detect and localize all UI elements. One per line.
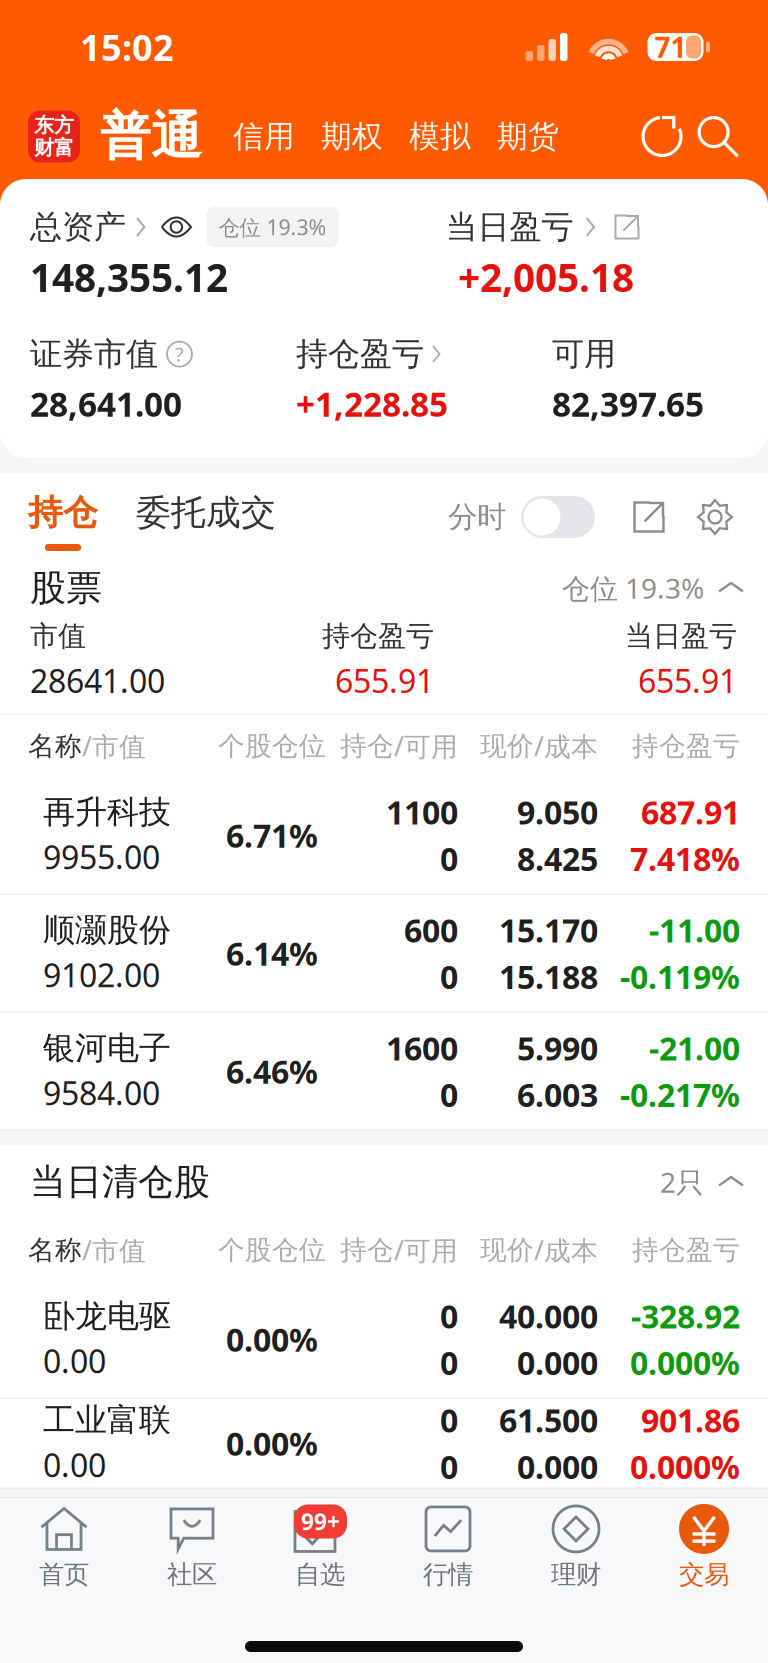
staticText: -328.92 [631,1295,740,1337]
staticText: 9955.00 [43,836,160,878]
staticText: 交易 [679,1559,729,1590]
staticText: 0 [440,837,458,880]
staticText: +2,005.18 [458,251,634,303]
staticText: 5.990 [517,1027,598,1069]
staticText: 普通 [100,105,202,168]
button[interactable]: 期权 [308,105,396,167]
staticText: 9584.00 [43,1072,160,1114]
staticText: 证券市值 [30,334,158,374]
staticText: 655.91 [335,659,434,702]
button[interactable]: 期货 [484,105,572,167]
staticText: 6.14% [226,932,318,974]
staticText: 0.00 [43,1340,106,1382]
button[interactable]: 总资产 [30,207,192,247]
staticText: 0.000 [517,1445,598,1488]
staticText: 1600 [386,1027,458,1069]
button[interactable]: 模拟 [396,105,484,167]
button[interactable]: 股票 [0,557,768,619]
staticText: 0.000% [630,1341,740,1384]
staticText: 82,397.65 [552,382,704,426]
staticText: 15.188 [499,955,598,998]
staticText: 持仓 [340,1234,394,1266]
staticText: 0 [440,1295,458,1337]
staticText: 99+ [301,1506,340,1536]
staticText: 分时 [448,499,506,535]
staticText: -0.217% [620,1073,740,1116]
button[interactable]: 当日清仓股 [0,1145,768,1219]
staticText: 15.170 [499,909,598,951]
staticText: 1100 [386,791,458,833]
button[interactable]: Search [690,108,746,164]
button[interactable]: Intraday chart toggle [521,496,595,538]
staticText: 持仓 [28,491,98,534]
button[interactable]: 当日盈亏 [446,207,640,247]
staticText: 9102.00 [43,954,160,996]
staticText: 6.46% [226,1050,318,1092]
button[interactable]: Refresh [634,108,690,164]
button[interactable]: 顺灏股份 [0,895,768,1013]
button[interactable]: 持仓 [28,473,98,557]
staticText: /成本 [534,728,598,764]
button[interactable]: Expand [627,495,671,539]
staticText: 自选 [295,1559,345,1590]
staticText: 卧龙电驱 [43,1296,171,1336]
staticText: 0 [440,955,458,998]
staticText: 名称 [28,730,82,762]
staticText: 0.00% [226,1318,318,1360]
staticText: /市值 [82,1232,146,1268]
staticText: 个股仓位 [218,730,326,762]
staticText: 655.91 [638,659,737,702]
staticText: 市值 [30,619,86,653]
button[interactable]: 工业富联 [0,1399,768,1489]
button[interactable]: 银河电子 [0,1013,768,1131]
staticText: ? [175,341,184,367]
staticText: 信用 [233,118,295,155]
staticText: 顺灏股份 [43,910,171,950]
button[interactable]: 信用 [220,105,308,167]
staticText: 9.050 [517,791,598,833]
staticText: 40.000 [499,1295,598,1337]
staticText: 当日盈亏 [625,619,737,653]
staticText: 社区 [167,1559,217,1590]
button[interactable]: 首页 [0,1501,128,1593]
staticText: 持仓盈亏 [632,730,740,762]
button[interactable]: 行情 [384,1501,512,1593]
button[interactable]: 卧龙电驱 [0,1281,768,1399]
staticText: 687.91 [641,791,740,833]
button[interactable]: 东方 [28,110,80,162]
staticText: 持仓盈亏 [322,619,434,653]
staticText: 0 [440,1445,458,1488]
button[interactable]: 社区 [128,1501,256,1593]
staticText: 0.000% [630,1445,740,1488]
staticText: 0 [440,1399,458,1441]
staticText: 行情 [423,1559,473,1590]
staticText: 工业富联 [43,1400,171,1440]
button[interactable]: 交易 [640,1501,768,1593]
staticText: 61.500 [499,1399,598,1441]
staticText: 持仓盈亏 [632,1234,740,1266]
staticText: 委托成交 [136,491,276,534]
staticText: 期货 [497,118,559,155]
staticText: 现价 [480,1234,534,1266]
staticText: 模拟 [409,118,471,155]
staticText: 持仓盈亏 [296,334,424,374]
staticText: 901.86 [641,1399,740,1441]
staticText: 0.00 [43,1444,106,1486]
staticText: /市值 [82,728,146,764]
staticText: 期权 [321,118,383,155]
button[interactable]: 持仓盈亏 [296,334,552,426]
button[interactable]: Settings [693,495,737,539]
button[interactable]: 再升科技 [0,777,768,895]
staticText: 0.00% [226,1422,318,1464]
button[interactable]: 普通 [100,105,202,167]
staticText: 首页 [39,1559,89,1590]
staticText: 0.000 [517,1341,598,1384]
button[interactable]: 委托成交 [136,473,276,557]
staticText: 15:02 [80,23,174,71]
staticText: 0 [440,1073,458,1116]
button[interactable]: 99+ [256,1501,384,1593]
button[interactable]: 理财 [512,1501,640,1593]
staticText: 理财 [551,1559,601,1590]
staticText: 2只 [660,1163,704,1201]
staticText: 当日清仓股 [30,1160,210,1204]
